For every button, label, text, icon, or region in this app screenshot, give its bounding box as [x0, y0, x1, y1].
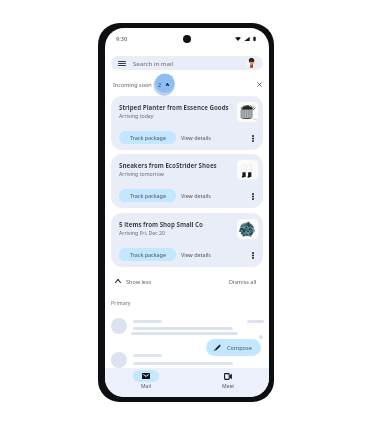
staticText: Mail [141, 383, 152, 390]
staticText: Track package [130, 192, 166, 199]
button[interactable]: Sneakers from EcoStrider Shoes [111, 154, 263, 208]
button[interactable]: Track package [119, 189, 176, 202]
staticText: View details [181, 192, 211, 199]
staticText: Arriving Fri, Dec 20 [119, 229, 166, 236]
staticText: Dismiss all [229, 278, 257, 285]
staticText: Track package [130, 134, 166, 141]
button[interactable]: Mail [133, 370, 159, 390]
staticText: Compose [227, 344, 252, 352]
button[interactable]: Striped Planter from Essence Goods [111, 96, 263, 150]
staticText: 5 items from Shop Small Co [119, 220, 203, 228]
button[interactable]: Meet [215, 370, 241, 390]
button[interactable]: More options [248, 132, 258, 145]
staticText: Track package [130, 251, 166, 258]
staticText: Show less [126, 278, 152, 285]
button[interactable]: More options [248, 190, 258, 203]
staticText: Sneakers from EcoStrider Shoes [119, 161, 217, 169]
staticText: Search in mail [133, 59, 174, 67]
staticText: Primary [111, 299, 131, 306]
button[interactable]: More options [248, 249, 258, 262]
button[interactable]: View details [181, 189, 211, 202]
button[interactable]: Track package [119, 131, 176, 144]
staticText: View details [181, 134, 211, 141]
button[interactable]: View details [181, 248, 211, 261]
button[interactable]: View details [181, 131, 211, 144]
staticText: Striped Planter from Essence Goods [119, 103, 229, 111]
button[interactable]: Show less [115, 275, 152, 287]
staticText: 9:30 [116, 35, 128, 43]
button[interactable]: 5 items from Shop Small Co [111, 213, 263, 267]
staticText: View details [181, 251, 211, 258]
staticText: 2 [158, 81, 162, 88]
button[interactable]: Account [246, 58, 256, 68]
button[interactable]: Dismiss all [229, 275, 257, 287]
staticText: Arriving today [119, 112, 154, 119]
button[interactable]: Track package [119, 248, 176, 261]
button[interactable]: Incoming soon [113, 81, 152, 88]
button[interactable]: Search in mail [111, 56, 263, 70]
staticText: Arriving tomorrow [119, 170, 164, 177]
staticText: Meet [222, 383, 235, 390]
button[interactable]: Dismiss [256, 81, 263, 88]
button[interactable]: Compose [206, 339, 261, 356]
